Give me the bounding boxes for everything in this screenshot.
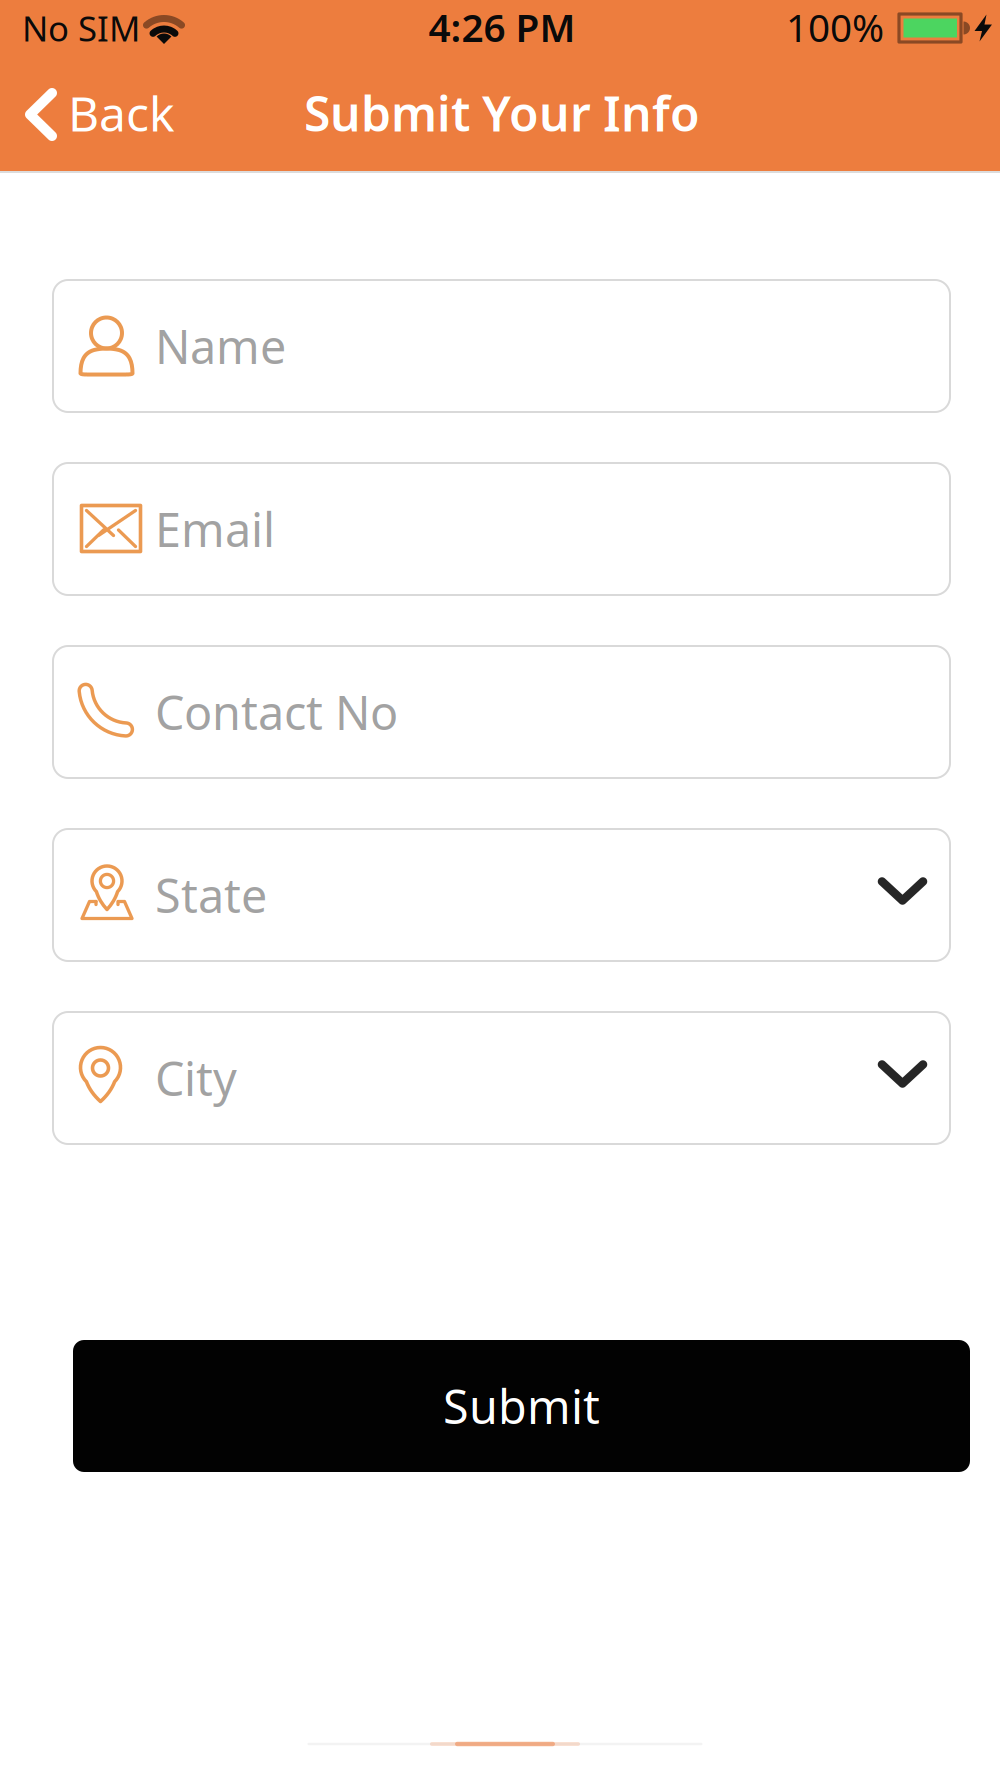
button[interactable]: State	[53, 829, 950, 961]
staticText: 100%	[786, 1, 884, 53]
staticText: Email	[155, 498, 275, 560]
button[interactable]: City	[53, 1012, 950, 1144]
button[interactable]: Name	[53, 280, 950, 412]
staticText: 4:26 PM	[428, 1, 575, 53]
button[interactable]: Email	[53, 463, 950, 595]
staticText: State	[155, 864, 267, 926]
staticText: Back	[68, 81, 175, 145]
staticText: Submit	[443, 1375, 600, 1437]
button[interactable]: Back	[0, 53, 240, 171]
staticText: Name	[155, 315, 286, 377]
staticText: Submit Your Info	[304, 81, 700, 145]
button[interactable]: Contact No	[53, 646, 950, 778]
staticText: No SIM	[22, 5, 140, 51]
staticText: Contact No	[155, 681, 398, 743]
button[interactable]: Submit	[73, 1340, 970, 1472]
staticText: City	[155, 1047, 237, 1109]
